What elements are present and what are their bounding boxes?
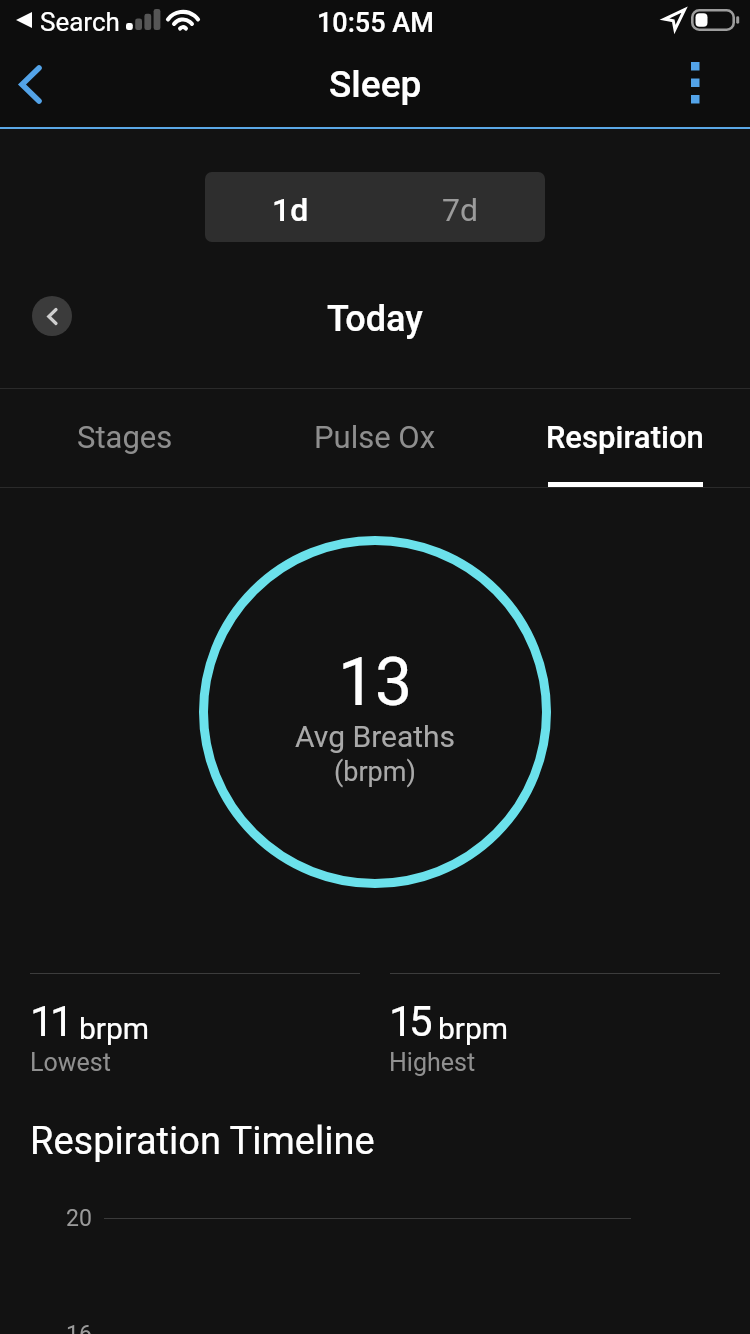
staticText: (brpm) [334,756,416,788]
staticText: brpm [79,1011,150,1046]
staticText: 1d [272,191,309,229]
staticText: 13 [338,644,413,721]
staticText: Pulse Ox [314,419,436,455]
staticText: Today [327,298,423,340]
staticText: Respiration [546,419,704,455]
staticText: Respiration Timeline [30,1119,375,1164]
button[interactable]: Stages [0,389,250,487]
button[interactable]: Previous day [32,296,72,336]
staticText: 11 [30,997,71,1046]
staticText: 10:55 AM [317,7,434,39]
staticText: 20 [66,1205,92,1232]
button[interactable]: 1d [205,172,375,242]
staticText: Sleep [329,63,422,106]
button[interactable]: Respiration [500,389,750,487]
button[interactable]: Back [8,62,52,106]
button[interactable]: 7d [375,172,545,242]
button[interactable]: Pulse Ox [250,389,500,487]
button[interactable]: More options [669,57,721,109]
staticText: Stages [77,419,173,455]
staticText: 15 [389,997,430,1046]
staticText: Avg Breaths [295,719,456,754]
staticText: Highest [389,1048,476,1077]
staticText: Lowest [30,1048,111,1077]
staticText: 7d [442,191,479,229]
staticText: brpm [438,1011,509,1046]
staticText: 16 [66,1321,92,1334]
staticText: Search [40,7,120,37]
